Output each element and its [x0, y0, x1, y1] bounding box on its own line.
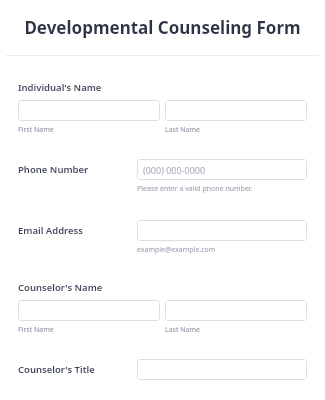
staticText: Developmental Counseling Form	[10, 16, 315, 39]
staticText: First Name	[18, 125, 160, 135]
staticText: Please enter a valid phone number.	[137, 184, 253, 194]
staticText: example@example.com	[137, 245, 216, 255]
button[interactable]	[137, 359, 307, 380]
staticText: Last Name	[165, 125, 307, 135]
staticText: Counselor's Name	[18, 281, 103, 294]
button[interactable]: (000) 000-0000	[137, 159, 307, 180]
button[interactable]	[18, 100, 160, 121]
button[interactable]	[165, 100, 307, 121]
button[interactable]	[18, 300, 160, 321]
staticText: Last Name	[165, 325, 307, 335]
staticText: First Name	[18, 325, 160, 335]
staticText: Counselor's Title	[18, 363, 95, 376]
staticText: Email Address	[18, 224, 83, 237]
button[interactable]	[137, 220, 307, 241]
staticText: Phone Number	[18, 163, 89, 176]
staticText: Individual's Name	[18, 81, 102, 94]
button[interactable]	[165, 300, 307, 321]
staticText: (000) 000-0000	[143, 164, 206, 176]
